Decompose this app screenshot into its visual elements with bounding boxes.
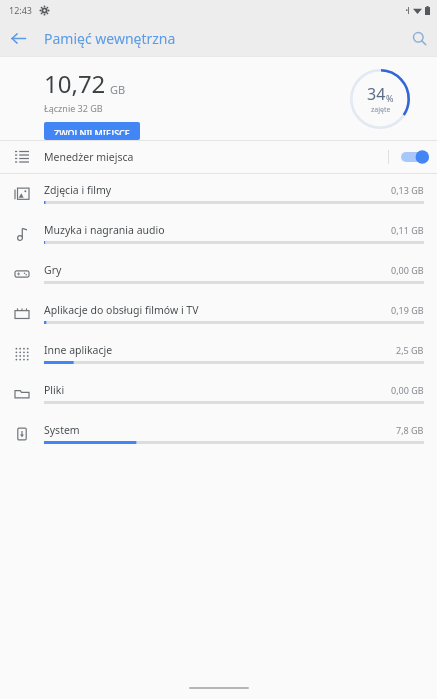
button[interactable]: ZWOLNIJ MIEJSCE xyxy=(44,122,140,140)
staticText: 0,13 GB xyxy=(391,184,424,196)
staticText: zajęte xyxy=(371,105,391,115)
staticText: % xyxy=(386,92,394,104)
staticText: Pamięć wewnętrzna xyxy=(44,29,176,48)
staticText: Zdjęcia i filmy xyxy=(44,183,112,197)
staticText: 0,00 GB xyxy=(391,264,424,276)
staticText: 12:43 xyxy=(9,4,33,16)
staticText: System xyxy=(44,423,80,437)
button[interactable]: System xyxy=(0,414,437,454)
staticText: Muzyka i nagrania audio xyxy=(44,223,165,237)
staticText: 10,72 xyxy=(44,67,106,100)
staticText: 0,11 GB xyxy=(391,224,424,236)
staticText: Łącznie 32 GB xyxy=(44,102,103,114)
staticText: 2,5 GB xyxy=(396,344,424,356)
button[interactable]: Szukaj xyxy=(401,20,437,56)
button[interactable]: Pliki xyxy=(0,374,437,414)
staticText: 34 xyxy=(367,83,386,105)
button[interactable]: Menedżer miejsca włączony xyxy=(401,149,429,165)
staticText: 0,00 GB xyxy=(391,384,424,396)
button[interactable]: Zdjęcia i filmy xyxy=(0,174,437,214)
button[interactable]: Muzyka i nagrania audio xyxy=(0,214,437,254)
button[interactable]: Menedżer miejsca xyxy=(0,141,437,173)
staticText: GB xyxy=(110,82,126,97)
staticText: 0,19 GB xyxy=(391,304,424,316)
staticText: Inne aplikacje xyxy=(44,343,113,357)
staticText: 7,8 GB xyxy=(396,424,424,436)
button[interactable]: Aplikacje do obsługi filmów i TV xyxy=(0,294,437,334)
staticText: Menedżer miejsca xyxy=(44,150,134,164)
staticText: Aplikacje do obsługi filmów i TV xyxy=(44,303,199,317)
button[interactable]: Wstecz xyxy=(0,20,36,56)
button[interactable]: Inne aplikacje xyxy=(0,334,437,374)
staticText: Pliki xyxy=(44,383,65,397)
staticText: Gry xyxy=(44,263,62,277)
staticText: ZWOLNIJ MIEJSCE xyxy=(54,127,130,135)
button[interactable]: Gry xyxy=(0,254,437,294)
